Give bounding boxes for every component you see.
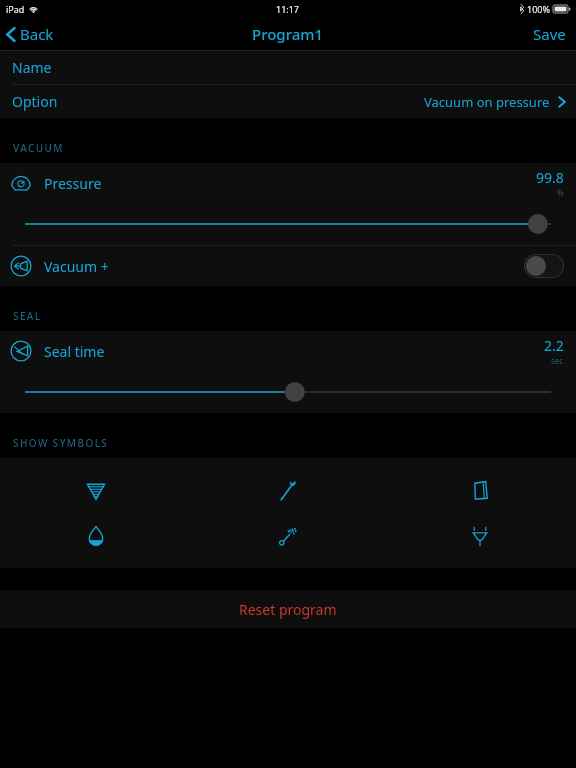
staticText: SEAL xyxy=(13,309,42,323)
button[interactable]: Save xyxy=(523,20,576,48)
staticText: Option xyxy=(12,92,58,111)
button[interactable]: Vacuum cone xyxy=(0,468,192,513)
staticText: 11:17 xyxy=(276,3,300,15)
button[interactable]: Vacuum + xyxy=(0,246,576,286)
staticText: sec xyxy=(551,355,564,366)
button[interactable]: Seal time xyxy=(0,331,576,413)
staticText: Vacuum on pressure xyxy=(424,93,550,111)
button[interactable]: Option xyxy=(0,85,576,118)
button[interactable]: Funnel xyxy=(384,513,576,558)
staticText: Program1 xyxy=(252,24,324,44)
staticText: Vacuum + xyxy=(44,257,109,276)
staticText: Save xyxy=(533,24,566,44)
button[interactable]: Back xyxy=(0,20,64,48)
staticText: iPad xyxy=(6,3,25,15)
staticText: Pressure xyxy=(44,174,102,193)
button[interactable]: Bag xyxy=(384,468,576,513)
staticText: % xyxy=(557,187,564,198)
staticText: 2.2 xyxy=(544,336,564,355)
staticText: Name xyxy=(12,58,52,77)
staticText: Back xyxy=(20,24,54,44)
staticText: SHOW SYMBOLS xyxy=(13,436,109,450)
button[interactable]: Reset program xyxy=(0,590,576,628)
button[interactable]: Probe xyxy=(192,468,384,513)
button[interactable]: Pressure xyxy=(0,163,576,245)
button[interactable]: Liquid xyxy=(0,513,192,558)
staticText: VACUUM xyxy=(13,141,64,155)
staticText: Seal time xyxy=(44,342,105,361)
button[interactable]: Spray xyxy=(192,513,384,558)
button[interactable]: Name xyxy=(0,51,576,84)
staticText: 100% xyxy=(527,3,550,15)
staticText: 99.8 xyxy=(536,168,564,187)
staticText: Reset program xyxy=(239,600,337,619)
